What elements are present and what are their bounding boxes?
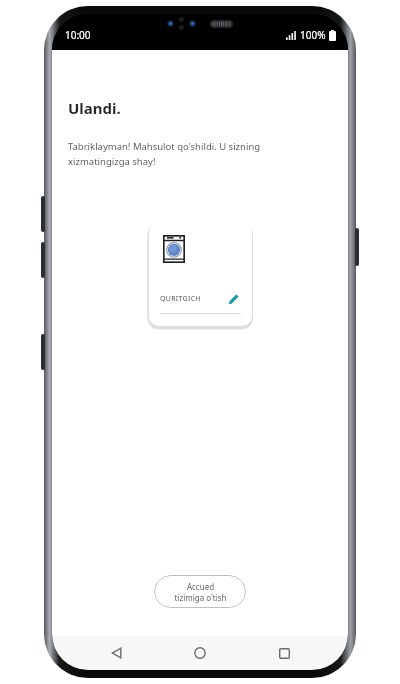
- button[interactable]: QURITGICH: [149, 223, 252, 326]
- button[interactable]: Accued tizimiga o'tish: [154, 575, 246, 608]
- staticText: 100%: [300, 28, 326, 42]
- staticText: 10:00: [65, 28, 91, 42]
- button[interactable]: Edit device name: [225, 291, 241, 307]
- staticText: QURITGICH: [160, 294, 201, 304]
- button[interactable]: Home: [181, 636, 219, 670]
- button[interactable]: Recent apps: [265, 636, 303, 670]
- staticText: Accued tizimiga o'tish: [174, 581, 227, 603]
- staticText: Ulandi.: [68, 98, 121, 118]
- staticText: Tabriklayman! Mahsulot qo'shildi. U sizn…: [68, 140, 261, 168]
- button[interactable]: Back: [98, 636, 136, 670]
